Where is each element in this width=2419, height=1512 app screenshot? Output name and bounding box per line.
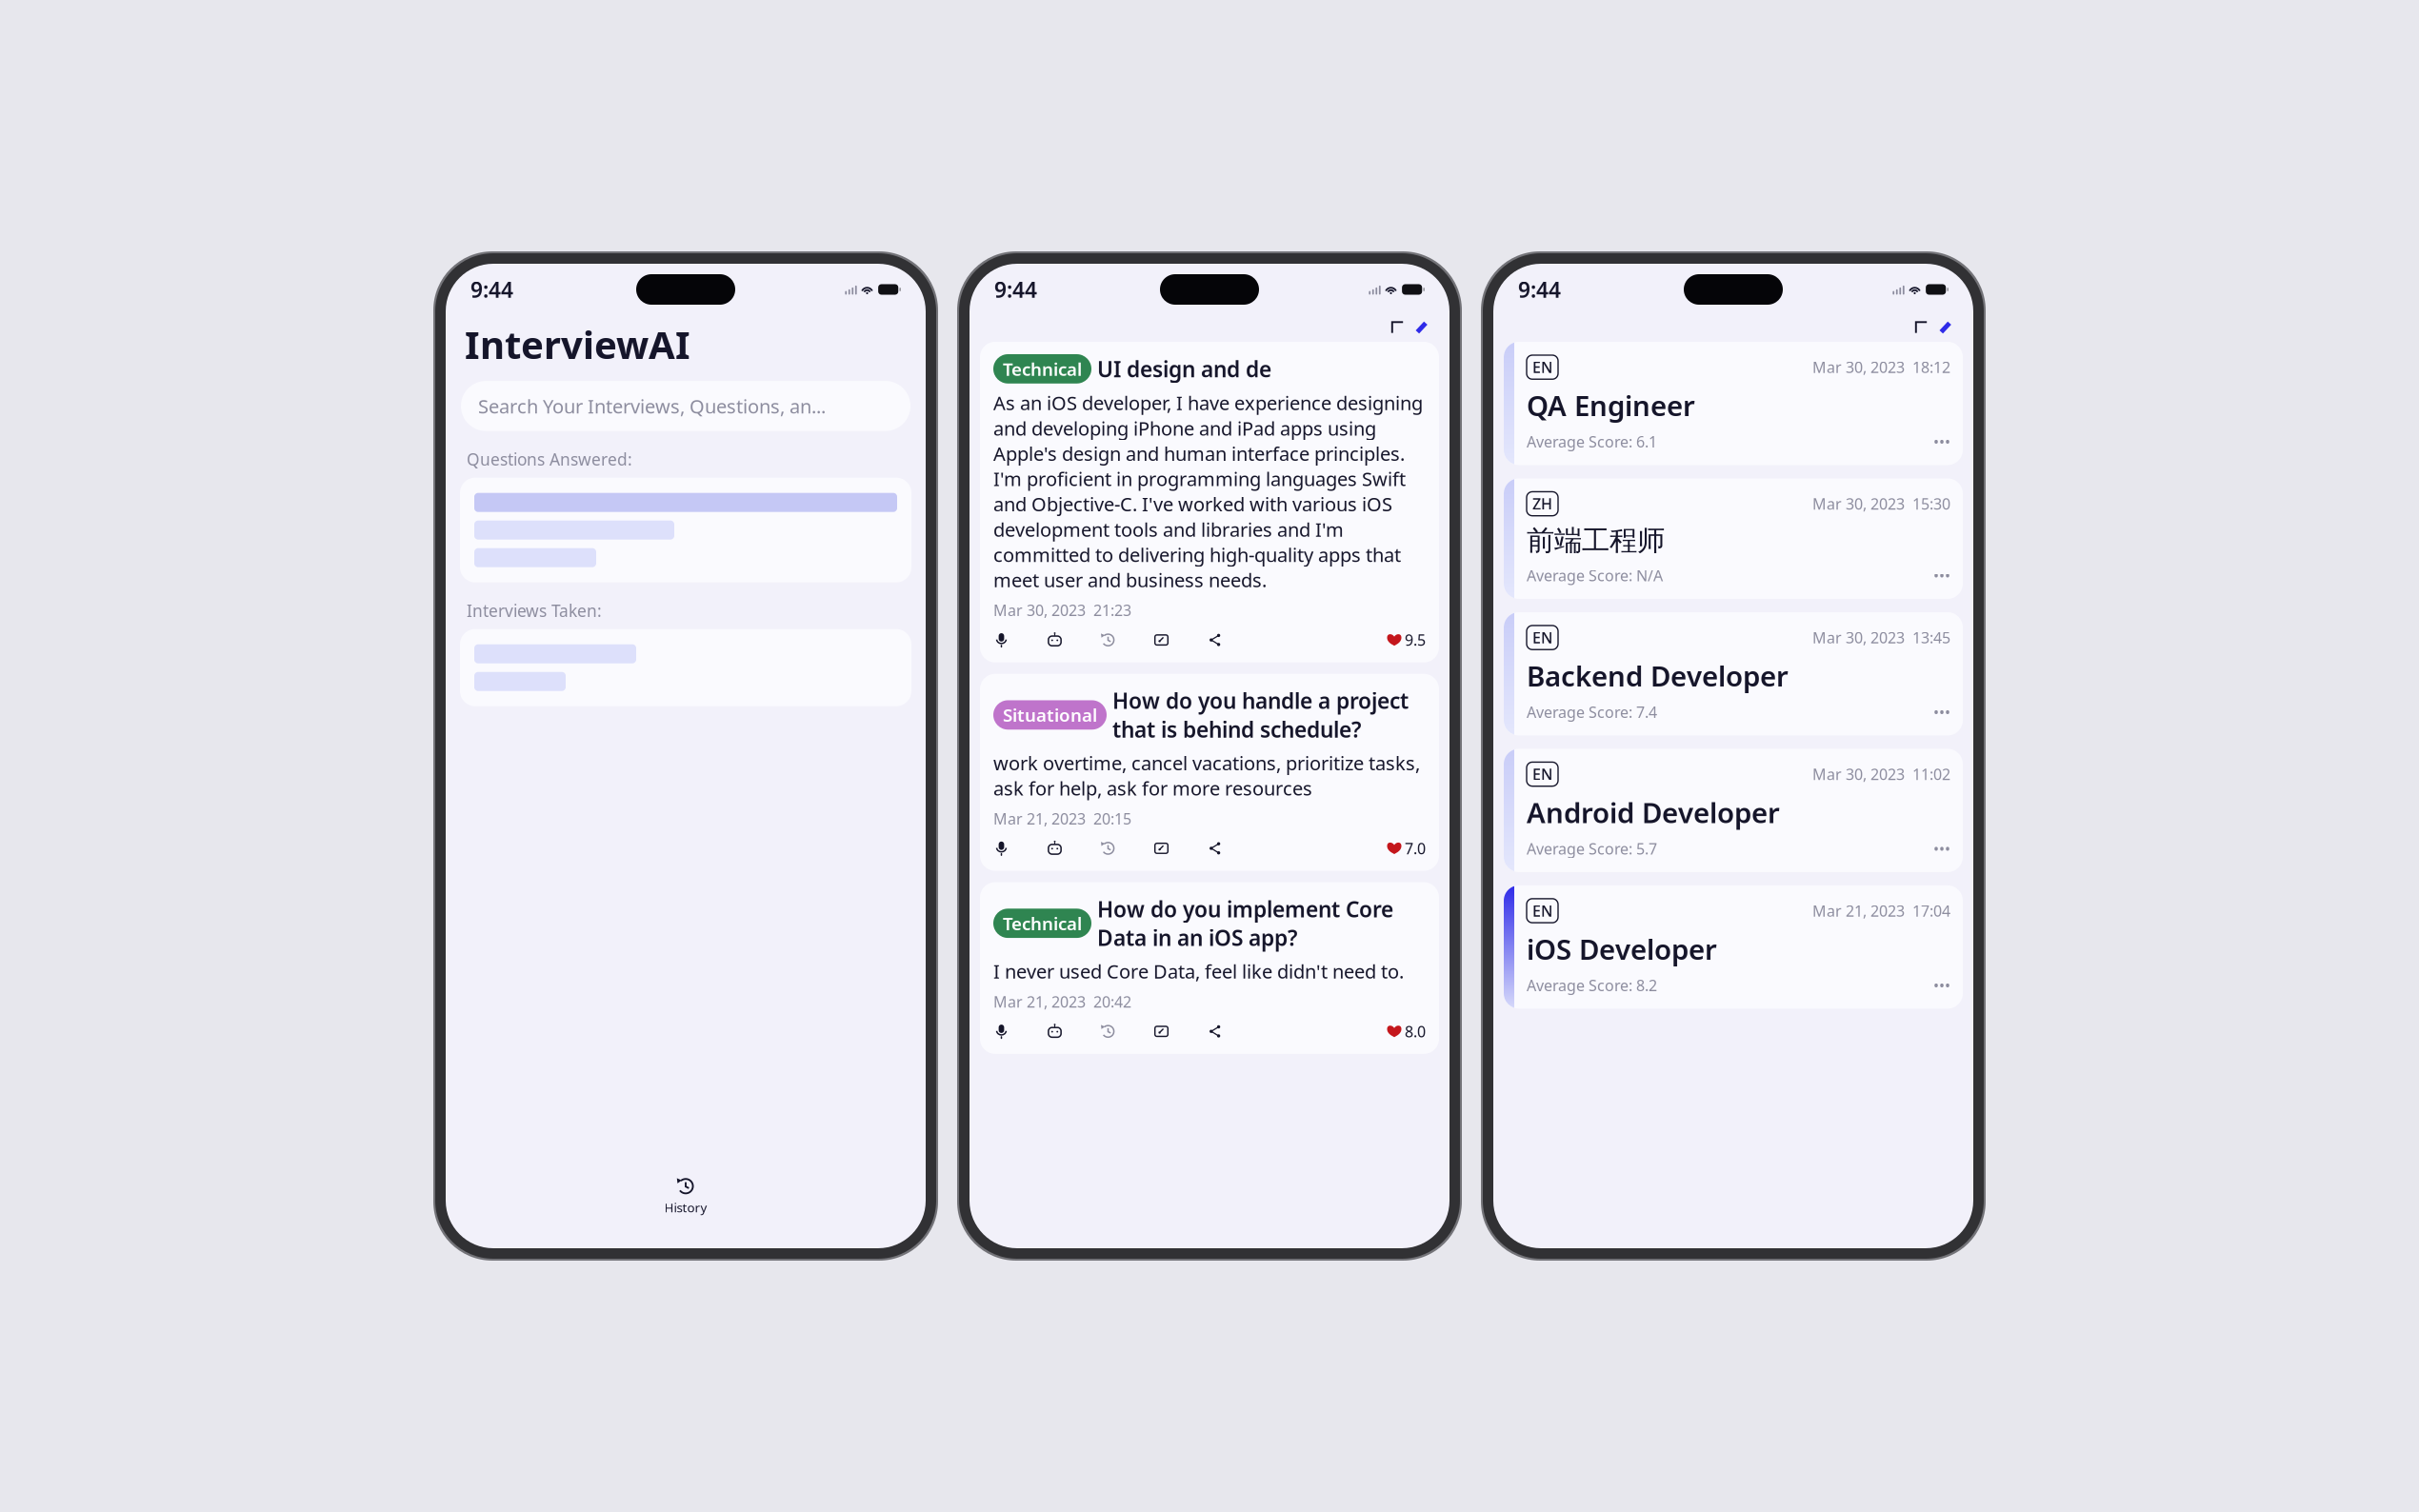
button[interactable]: Share bbox=[1207, 840, 1223, 856]
button[interactable]: EN bbox=[1504, 612, 1963, 736]
staticText: How do you handle a project that is behi… bbox=[1112, 686, 1409, 744]
staticText: Mar 21, 2023 20:42 bbox=[993, 991, 1131, 1012]
button[interactable]: EN bbox=[1504, 885, 1963, 1009]
staticText: Mar 30, 2023 21:23 bbox=[993, 600, 1131, 620]
staticText: ••• bbox=[1933, 565, 1950, 585]
staticText: work overtime, cancel vacations, priorit… bbox=[993, 750, 1420, 801]
staticText: ••• bbox=[1933, 702, 1950, 722]
staticText: 9:44 bbox=[994, 275, 1037, 304]
staticText: EN bbox=[1532, 357, 1552, 377]
staticText: Interviews Taken: bbox=[467, 600, 602, 621]
button[interactable]: Share bbox=[1207, 632, 1223, 648]
staticText: Average Score: 6.1 bbox=[1527, 432, 1657, 452]
button[interactable]: Share bbox=[1207, 1023, 1223, 1039]
button[interactable]: New interview bbox=[1938, 320, 1952, 335]
button[interactable]: History bbox=[1100, 632, 1116, 648]
staticText: ••• bbox=[1933, 975, 1950, 995]
staticText: 9:44 bbox=[1518, 275, 1561, 304]
staticText: Backend Developer bbox=[1527, 657, 1789, 694]
staticText: Average Score: 7.4 bbox=[1527, 702, 1657, 722]
staticText: History bbox=[664, 1199, 707, 1216]
staticText: As an iOS developer, I have experience d… bbox=[993, 390, 1423, 593]
button[interactable]: AI answer bbox=[1047, 632, 1063, 648]
staticText: Mar 30, 2023 11:02 bbox=[1812, 764, 1950, 784]
staticText: Questions Answered: bbox=[467, 448, 632, 470]
staticText: Mar 21, 2023 17:04 bbox=[1812, 901, 1950, 921]
button[interactable]: Technical bbox=[980, 882, 1439, 1054]
button[interactable]: AI answer bbox=[1047, 1023, 1063, 1039]
staticText: Situational bbox=[1003, 703, 1097, 727]
staticText: How do you implement Core Data in an iOS… bbox=[1097, 895, 1393, 952]
button[interactable]: AI answer bbox=[1047, 840, 1063, 856]
staticText: Mar 21, 2023 20:15 bbox=[993, 808, 1131, 829]
staticText: UI design and de bbox=[1097, 354, 1271, 383]
button[interactable]: Edit note bbox=[1153, 1023, 1170, 1039]
button[interactable]: New interview bbox=[1414, 320, 1429, 335]
button[interactable]: Edit note bbox=[1153, 840, 1170, 856]
staticText: ••• bbox=[1933, 432, 1950, 452]
staticText: Technical bbox=[1003, 911, 1082, 935]
staticText: Search Your Interviews, Questions, an... bbox=[478, 393, 826, 419]
button[interactable]: Record answer bbox=[993, 1023, 1010, 1039]
button[interactable]: History bbox=[1100, 840, 1116, 856]
staticText: 前端工程师 bbox=[1527, 523, 1665, 558]
button[interactable]: Edit note bbox=[1153, 632, 1170, 648]
button[interactable]: Search Your Interviews, Questions, an... bbox=[461, 381, 910, 431]
staticText: ZH bbox=[1532, 494, 1552, 514]
staticText: iOS Developer bbox=[1527, 930, 1717, 967]
staticText: Technical bbox=[1003, 357, 1082, 381]
staticText: Android Developer bbox=[1527, 794, 1780, 831]
button[interactable]: History bbox=[1100, 1023, 1116, 1039]
staticText: Mar 30, 2023 15:30 bbox=[1812, 494, 1950, 514]
button[interactable]: Record answer bbox=[993, 632, 1010, 648]
button[interactable]: History bbox=[664, 1176, 707, 1216]
staticText: EN bbox=[1532, 901, 1552, 921]
button[interactable]: Technical bbox=[980, 342, 1439, 662]
staticText: EN bbox=[1532, 627, 1552, 648]
staticText: Average Score: N/A bbox=[1527, 565, 1663, 585]
button[interactable]: ZH bbox=[1504, 478, 1963, 599]
button[interactable]: Scan bbox=[1914, 320, 1929, 335]
staticText: I never used Core Data, feel like didn't… bbox=[993, 959, 1404, 984]
button[interactable]: Scan bbox=[1390, 320, 1405, 335]
button[interactable]: Situational bbox=[980, 674, 1439, 871]
staticText: Mar 30, 2023 13:45 bbox=[1812, 627, 1950, 648]
button[interactable]: EN bbox=[1504, 342, 1963, 465]
staticText: QA Engineer bbox=[1527, 387, 1695, 424]
button[interactable]: Record answer bbox=[993, 840, 1010, 856]
staticText: InterviewAI bbox=[465, 319, 690, 370]
staticText: 8.0 bbox=[1405, 1021, 1426, 1041]
staticText: 9:44 bbox=[470, 275, 513, 304]
staticText: Average Score: 5.7 bbox=[1527, 838, 1657, 859]
staticText: Average Score: 8.2 bbox=[1527, 975, 1657, 995]
staticText: 9.5 bbox=[1405, 630, 1426, 650]
staticText: EN bbox=[1532, 764, 1552, 784]
button[interactable]: EN bbox=[1504, 749, 1963, 872]
staticText: Mar 30, 2023 18:12 bbox=[1812, 357, 1950, 377]
staticText: 7.0 bbox=[1405, 838, 1426, 858]
staticText: ••• bbox=[1933, 838, 1950, 859]
